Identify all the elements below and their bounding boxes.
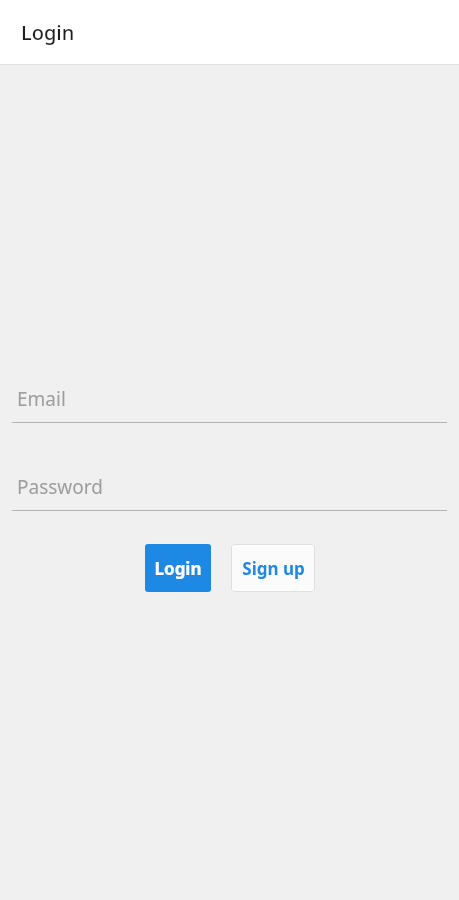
button[interactable]: Password [12, 463, 447, 511]
button[interactable]: Login [145, 544, 211, 592]
button[interactable]: Email [12, 375, 447, 423]
staticText: Password [17, 474, 103, 500]
staticText: Email [17, 386, 66, 412]
button[interactable]: Sign up [231, 544, 315, 592]
staticText: Login [154, 557, 202, 580]
staticText: Login [21, 19, 75, 46]
staticText: Sign up [242, 557, 305, 580]
